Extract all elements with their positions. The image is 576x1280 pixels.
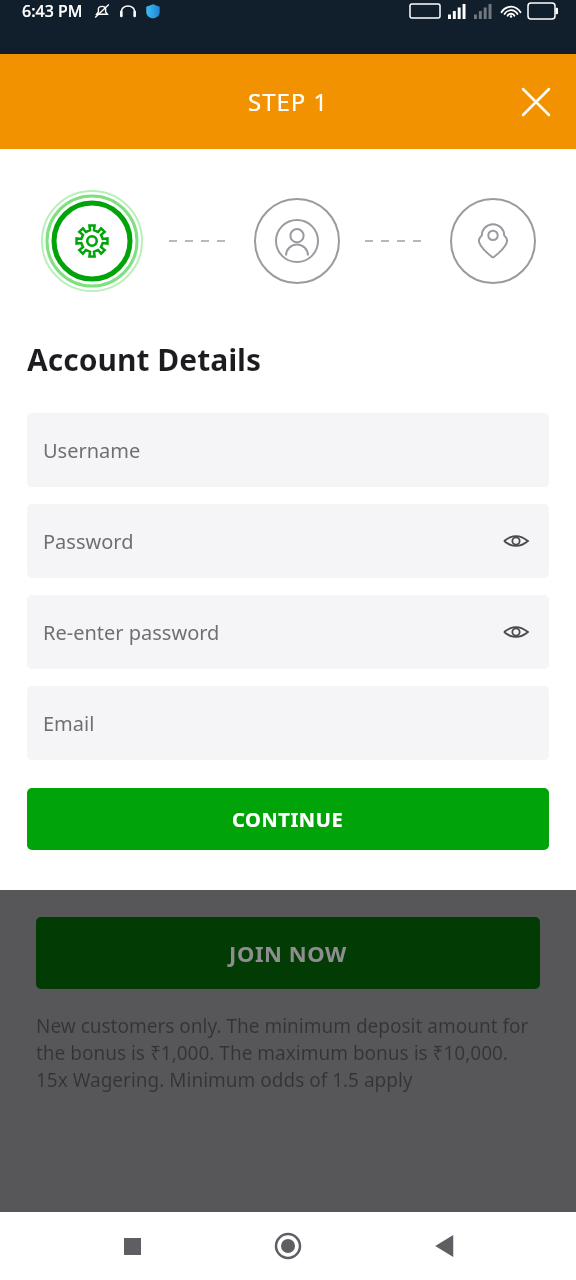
staticText: Re-enter password <box>43 619 220 646</box>
staticText: Account Details <box>27 339 262 380</box>
staticText: Password <box>43 528 134 555</box>
staticText: Email <box>43 710 95 737</box>
button[interactable]: Password <box>27 504 549 578</box>
button[interactable]: Back <box>420 1222 468 1270</box>
button[interactable]: Re-enter password <box>27 595 549 669</box>
staticText: STEP 1 <box>248 85 329 118</box>
button[interactable]: Username <box>27 413 549 487</box>
staticText: JOIN NOW <box>229 938 347 968</box>
button[interactable]: Close <box>514 80 558 124</box>
button[interactable]: Home <box>264 1222 312 1270</box>
staticText: Username <box>43 437 141 464</box>
button[interactable]: Email <box>27 686 549 760</box>
staticText: New customers only. The minimum deposit … <box>36 1013 540 1093</box>
staticText: 6:43 PM <box>22 0 83 22</box>
button[interactable]: CONTINUE <box>27 788 549 850</box>
button[interactable]: Recents <box>108 1222 156 1270</box>
staticText: CONTINUE <box>232 806 344 833</box>
button[interactable]: JOIN NOW <box>36 917 540 989</box>
